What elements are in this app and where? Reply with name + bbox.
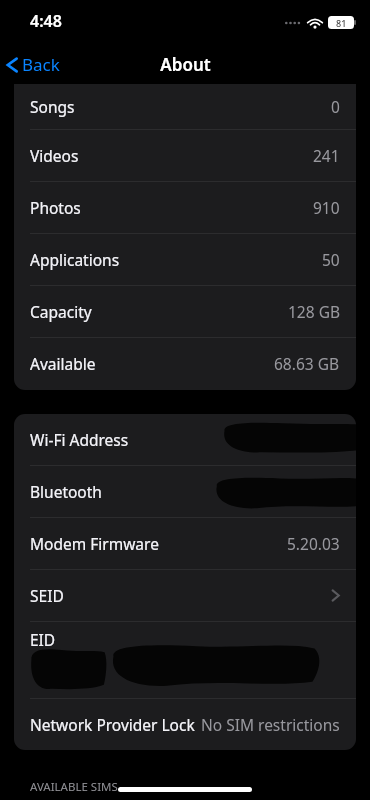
button[interactable]: Wi-Fi Address — [14, 414, 356, 465]
button[interactable]: Songs — [14, 84, 356, 129]
button[interactable]: EID — [14, 622, 356, 698]
staticText: About — [160, 53, 211, 76]
staticText: AVAILABLE SIMS — [30, 779, 118, 795]
staticText: 0 — [331, 96, 340, 117]
button[interactable]: Photos — [14, 182, 356, 233]
button[interactable]: Bluetooth — [14, 466, 356, 517]
staticText: Bluetooth — [30, 481, 102, 502]
staticText: 68.63 GB — [274, 353, 340, 374]
staticText: Songs — [30, 96, 75, 117]
staticText: 910 — [313, 197, 340, 218]
staticText: 81 — [336, 17, 347, 29]
staticText: Back — [22, 53, 60, 76]
staticText: 241 — [313, 145, 340, 166]
button[interactable]: Modem Firmware — [14, 518, 356, 569]
staticText: Photos — [30, 197, 81, 218]
button[interactable]: Back — [0, 49, 68, 80]
staticText: Applications — [30, 249, 120, 270]
staticText: 4:48 — [30, 10, 62, 32]
button[interactable]: SEID — [14, 570, 356, 621]
staticText: SEID — [30, 585, 64, 606]
staticText: EID — [30, 629, 56, 650]
button[interactable]: Applications — [14, 234, 356, 285]
staticText: Modem Firmware — [30, 533, 159, 554]
staticText: Videos — [30, 145, 79, 166]
staticText: No SIM restrictions — [201, 714, 340, 735]
staticText: Capacity — [30, 301, 92, 322]
button[interactable]: Videos — [14, 130, 356, 181]
staticText: 5.20.03 — [287, 533, 340, 554]
button[interactable]: Capacity — [14, 286, 356, 337]
button[interactable]: Available — [14, 338, 356, 389]
staticText: Available — [30, 353, 96, 374]
button[interactable]: Network Provider Lock — [14, 699, 356, 750]
staticText: Wi-Fi Address — [30, 429, 129, 450]
staticText: 128 GB — [288, 301, 340, 322]
staticText: Network Provider Lock — [30, 714, 195, 735]
staticText: 50 — [322, 249, 340, 270]
